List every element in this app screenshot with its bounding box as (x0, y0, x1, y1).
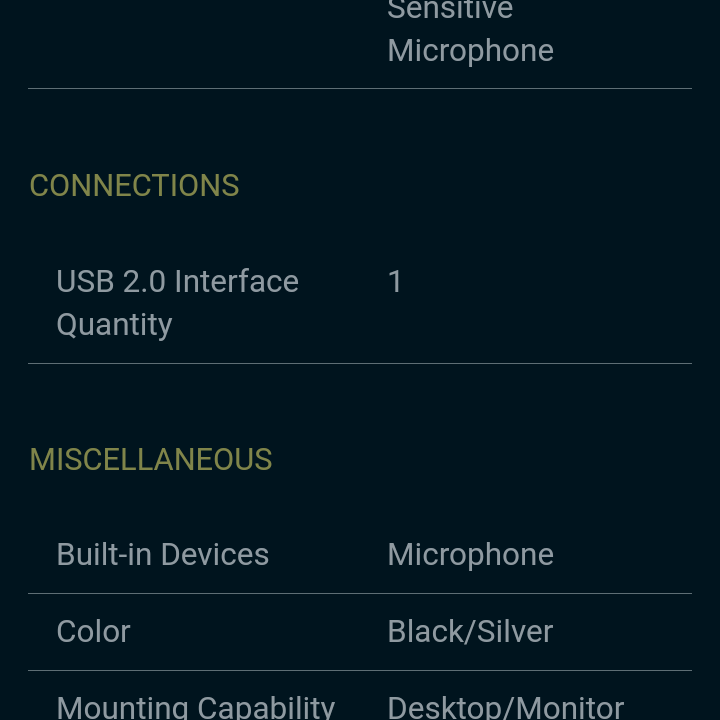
staticText: USB 2.0 Interface Quantity (56, 258, 387, 344)
staticText: Built-in Devices (56, 531, 387, 574)
button[interactable]: Mounting Capability (0, 671, 720, 720)
staticText: Mounting Capability (56, 685, 387, 720)
button[interactable]: Microphone Type (0, 0, 720, 88)
button[interactable]: Color (0, 594, 720, 670)
staticText: MISCELLANEOUS (29, 436, 273, 479)
staticText: 1 (387, 258, 405, 301)
other: Product specifications (0, 0, 720, 720)
staticText: Desktop/Monitor (387, 685, 625, 720)
button[interactable]: USB 2.0 Interface Quantity (0, 241, 720, 363)
button[interactable]: Built-in Devices (0, 517, 720, 593)
staticText: Microphone (387, 531, 555, 574)
staticText: Noise- Sensitive Microphone (387, 0, 555, 70)
staticText: CONNECTIONS (29, 162, 240, 205)
staticText: Color (56, 608, 387, 651)
staticText: Black/Silver (387, 608, 554, 651)
